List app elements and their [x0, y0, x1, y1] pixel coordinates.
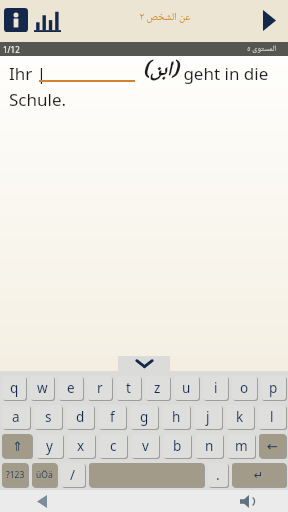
button[interactable]: x: [67, 434, 95, 458]
button[interactable]: Statistics: [32, 8, 62, 34]
button[interactable]: l: [258, 405, 286, 429]
staticText: t: [126, 379, 131, 397]
staticText: Ihr |: [9, 62, 47, 85]
staticText: e: [67, 379, 75, 397]
button[interactable]: g: [130, 405, 158, 429]
button[interactable]: /: [61, 463, 85, 487]
button[interactable]: üÖä: [32, 463, 57, 487]
button[interactable]: s: [34, 405, 62, 429]
button[interactable]: Hide keyboard: [118, 356, 170, 371]
button[interactable]: ↵: [232, 463, 286, 487]
staticText: w: [37, 379, 48, 397]
button[interactable]: z: [145, 376, 170, 400]
staticText: geht in die: [179, 62, 269, 85]
staticText: i: [214, 379, 218, 397]
button[interactable]: e: [58, 376, 83, 400]
button[interactable]: c: [99, 434, 127, 458]
staticText: عن الشخص ٢: [139, 9, 191, 27]
staticText: u: [182, 379, 191, 397]
button[interactable]: Back: [32, 491, 52, 511]
staticText: ⇑: [12, 439, 23, 454]
staticText: s: [45, 408, 52, 426]
staticText: /: [70, 466, 76, 484]
button[interactable]: u: [174, 376, 199, 400]
staticText: d: [76, 408, 85, 426]
staticText: l: [270, 408, 274, 426]
button[interactable]: Info: [2, 6, 30, 34]
staticText: ↵: [254, 469, 264, 482]
staticText: z: [154, 379, 161, 397]
staticText: f: [110, 408, 115, 426]
staticText: Schule.: [9, 88, 67, 111]
staticText: x: [77, 437, 85, 455]
staticText: c: [110, 437, 117, 455]
staticText: h: [172, 408, 181, 426]
button[interactable]: Volume: [238, 491, 258, 511]
staticText: m: [235, 437, 248, 455]
button[interactable]: p: [261, 376, 286, 400]
staticText: k: [236, 408, 244, 426]
button[interactable]: t: [116, 376, 141, 400]
button[interactable]: i: [203, 376, 228, 400]
button[interactable]: a: [2, 405, 30, 429]
button[interactable]: j: [194, 405, 222, 429]
button[interactable]: r: [87, 376, 112, 400]
button[interactable]: f: [98, 405, 126, 429]
staticText: b: [173, 437, 182, 455]
staticText: 1/12: [3, 44, 20, 55]
staticText: المستوى ٥: [247, 42, 277, 56]
button[interactable]: k: [226, 405, 254, 429]
button[interactable]: w: [30, 376, 54, 400]
staticText: q: [10, 379, 19, 397]
staticText: p: [269, 379, 278, 397]
button[interactable]: q: [2, 376, 26, 400]
button[interactable]: n: [195, 434, 223, 458]
staticText: a: [12, 408, 20, 426]
button[interactable]: d: [66, 405, 94, 429]
staticText: (ابن): [143, 54, 179, 88]
staticText: .: [216, 466, 220, 484]
button[interactable]: v: [131, 434, 159, 458]
staticText: ?123: [6, 469, 25, 481]
staticText: j: [206, 408, 210, 426]
staticText: üÖä: [36, 469, 53, 481]
button[interactable]: ←: [259, 434, 286, 458]
staticText: v: [142, 437, 149, 455]
button[interactable]: Next: [256, 7, 282, 33]
staticText: y: [46, 437, 53, 455]
staticText: ←: [267, 439, 278, 454]
button[interactable]: ⇑: [2, 434, 32, 458]
button[interactable]: o: [232, 376, 257, 400]
staticText: g: [140, 408, 149, 426]
button[interactable]: h: [162, 405, 190, 429]
button[interactable]: ?123: [2, 463, 28, 487]
button[interactable]: m: [227, 434, 255, 458]
staticText: o: [240, 379, 249, 397]
button[interactable]: .: [208, 463, 228, 487]
staticText: r: [97, 379, 103, 397]
button[interactable]: y: [36, 434, 63, 458]
staticText: n: [205, 437, 214, 455]
button[interactable]: b: [163, 434, 191, 458]
